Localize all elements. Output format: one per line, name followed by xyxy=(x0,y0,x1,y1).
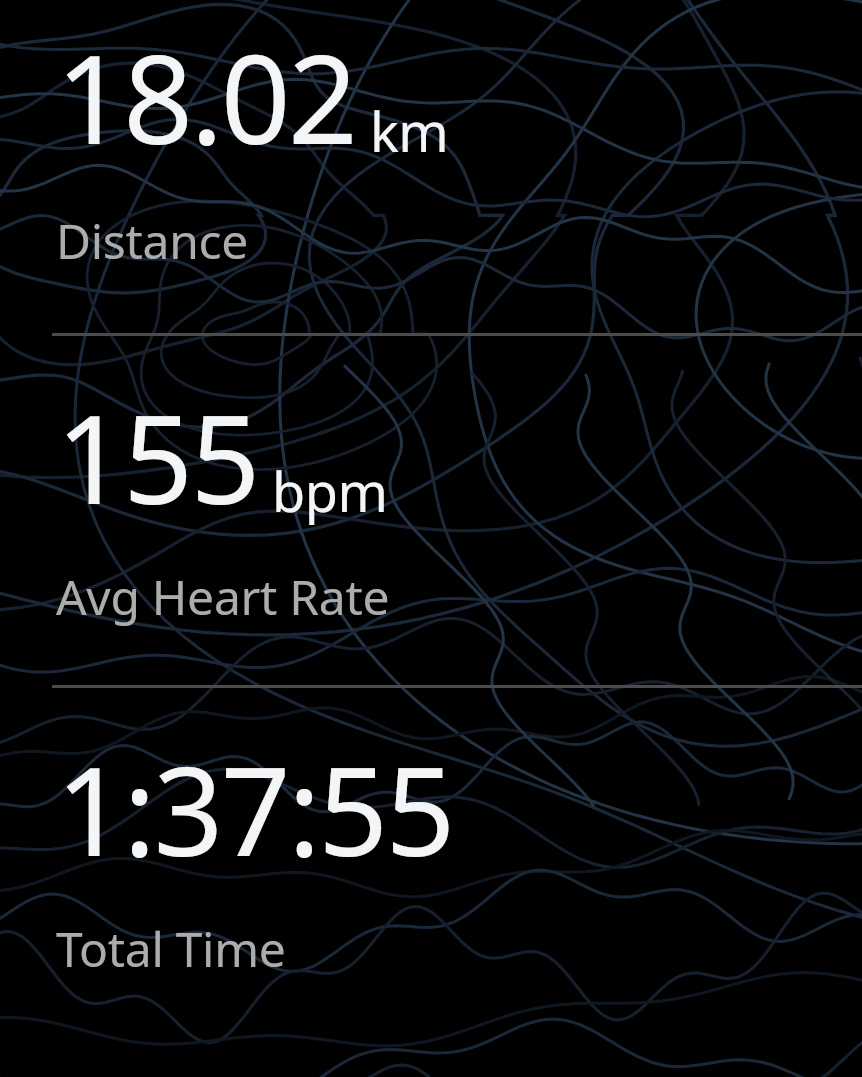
staticText: bpm xyxy=(272,454,388,528)
staticText: Distance xyxy=(56,208,249,273)
button[interactable]: Total time 1 hour 37 minutes 55 seconds xyxy=(0,688,862,981)
staticText: 1:37:55 xyxy=(56,726,453,892)
staticText: Avg Heart Rate xyxy=(56,564,390,629)
staticText: 155 xyxy=(56,374,258,540)
staticText: 18.02 xyxy=(56,14,356,180)
staticText: km xyxy=(370,94,449,168)
button[interactable]: Distance 18.02 kilometres xyxy=(0,0,862,333)
button[interactable]: Average heart rate 155 beats per minute xyxy=(0,336,862,685)
staticText: Total Time xyxy=(56,916,286,981)
